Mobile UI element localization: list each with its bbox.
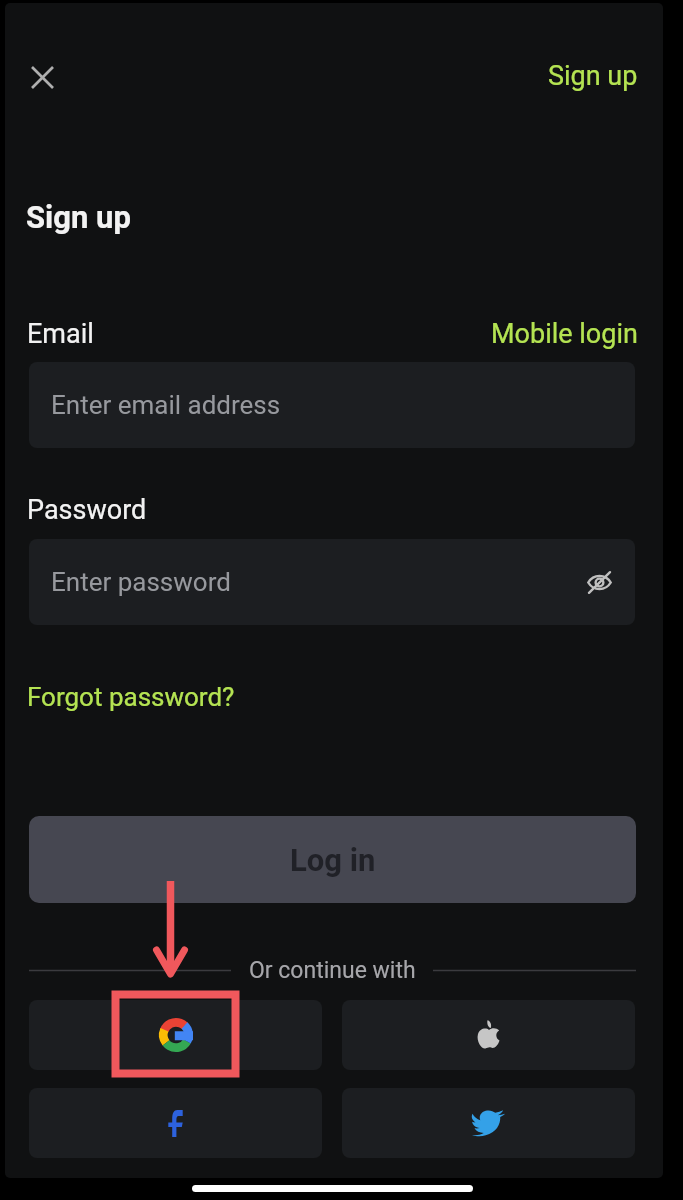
button[interactable]: Sign in with Twitter bbox=[342, 1088, 635, 1158]
button[interactable]: Show password bbox=[580, 563, 618, 601]
staticText: Enter password bbox=[51, 567, 231, 597]
staticText: Log in bbox=[290, 842, 376, 878]
staticText: Or continue with bbox=[249, 957, 416, 984]
staticText: Mobile login bbox=[491, 318, 638, 350]
button[interactable]: Sign up bbox=[536, 52, 650, 100]
button[interactable]: Enter email address bbox=[29, 362, 635, 448]
staticText: Forgot password? bbox=[27, 682, 235, 712]
button[interactable]: Sign in with Facebook bbox=[29, 1088, 322, 1158]
staticText: Sign up bbox=[548, 60, 638, 92]
button[interactable]: Enter password bbox=[29, 539, 635, 625]
staticText: Password bbox=[27, 494, 147, 526]
button[interactable]: Sign in with Google bbox=[29, 1000, 322, 1070]
button[interactable]: Forgot password? bbox=[15, 674, 247, 720]
staticText: Sign up bbox=[26, 199, 131, 235]
button[interactable]: Sign in with Apple bbox=[342, 1000, 635, 1070]
staticText: Enter email address bbox=[51, 390, 281, 420]
button[interactable]: Close bbox=[18, 53, 66, 101]
staticText: Email bbox=[27, 318, 94, 350]
button[interactable]: Log in bbox=[29, 816, 636, 903]
button[interactable]: Mobile login bbox=[479, 310, 650, 358]
